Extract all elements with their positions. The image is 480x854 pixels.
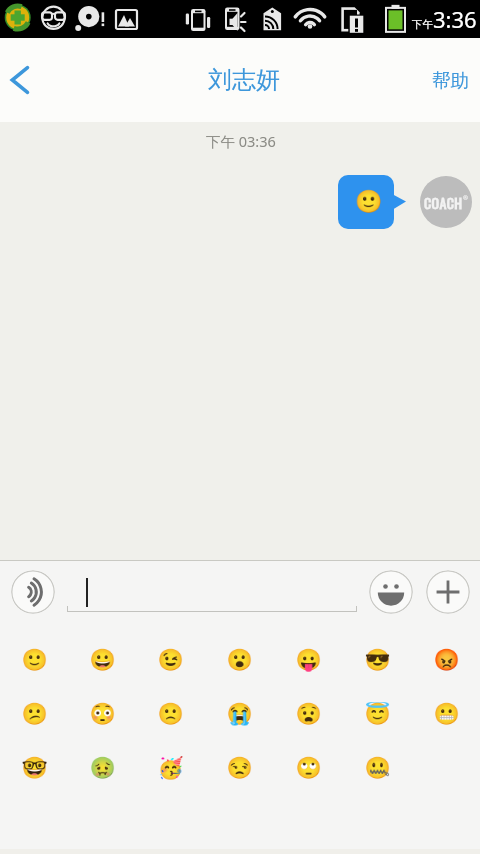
button[interactable]: 😧 — [285, 691, 331, 737]
staticText: 😬 — [433, 702, 460, 727]
staticText: 下午 03:36 — [206, 131, 276, 151]
button[interactable]: 😎 — [354, 637, 400, 683]
button[interactable]: 😇 — [354, 691, 400, 737]
staticText: 刘志妍 — [208, 65, 280, 95]
staticText: 😧 — [295, 702, 322, 727]
button[interactable]: 🤢 — [79, 745, 125, 791]
staticText: 😳 — [89, 702, 116, 727]
button[interactable]: 🙂 — [11, 637, 57, 683]
staticText: 3:36 — [433, 4, 477, 34]
staticText: 🤓 — [21, 756, 48, 781]
staticText: 😮 — [226, 648, 253, 673]
staticText: 🤐 — [364, 756, 391, 781]
button[interactable]: 🙄 — [285, 745, 331, 791]
button[interactable]: 😛 — [285, 637, 331, 683]
button[interactable]: COACH — [420, 176, 472, 228]
button[interactable]: 🤐 — [354, 745, 400, 791]
staticText: 😎 — [364, 648, 391, 673]
button[interactable]: Add — [426, 570, 470, 614]
staticText: 😭 — [226, 702, 253, 727]
staticText: 🙄 — [295, 756, 322, 781]
button[interactable]: 🥳 — [147, 745, 193, 791]
staticText: 😇 — [364, 702, 391, 727]
button[interactable]: 😬 — [423, 691, 469, 737]
staticText: 😒 — [226, 756, 253, 781]
staticText: 🙂 — [355, 189, 383, 215]
staticText: COACH — [424, 192, 463, 213]
staticText: 😕 — [21, 702, 48, 727]
button[interactable]: 🙁 — [147, 691, 193, 737]
button[interactable]: 😉 — [147, 637, 193, 683]
staticText: 🙁 — [157, 702, 184, 727]
staticText: 下午 — [412, 18, 433, 31]
staticText: 😡 — [433, 648, 460, 673]
button[interactable]: 😒 — [216, 745, 262, 791]
button[interactable]: 😭 — [216, 691, 262, 737]
button[interactable]: 😀 — [79, 637, 125, 683]
button[interactable]: Emoji — [369, 570, 413, 614]
button[interactable]: 😳 — [79, 691, 125, 737]
staticText: ® — [463, 194, 468, 202]
staticText: 😀 — [89, 648, 116, 673]
staticText: 😉 — [157, 648, 184, 673]
button[interactable]: 🙂 — [338, 175, 394, 229]
staticText: 帮助 — [432, 69, 469, 92]
staticText: 🙂 — [21, 648, 48, 673]
button[interactable]: 😡 — [423, 637, 469, 683]
staticText: 😛 — [295, 648, 322, 673]
button[interactable]: 😮 — [216, 637, 262, 683]
button[interactable]: 帮助 — [421, 61, 480, 100]
staticText: 🥳 — [157, 756, 184, 781]
staticText: 🤢 — [89, 756, 116, 781]
button[interactable]: 😕 — [11, 691, 57, 737]
button[interactable]: Back — [0, 58, 44, 102]
button[interactable]: Voice input — [11, 570, 55, 614]
button[interactable]: 🤓 — [11, 745, 57, 791]
